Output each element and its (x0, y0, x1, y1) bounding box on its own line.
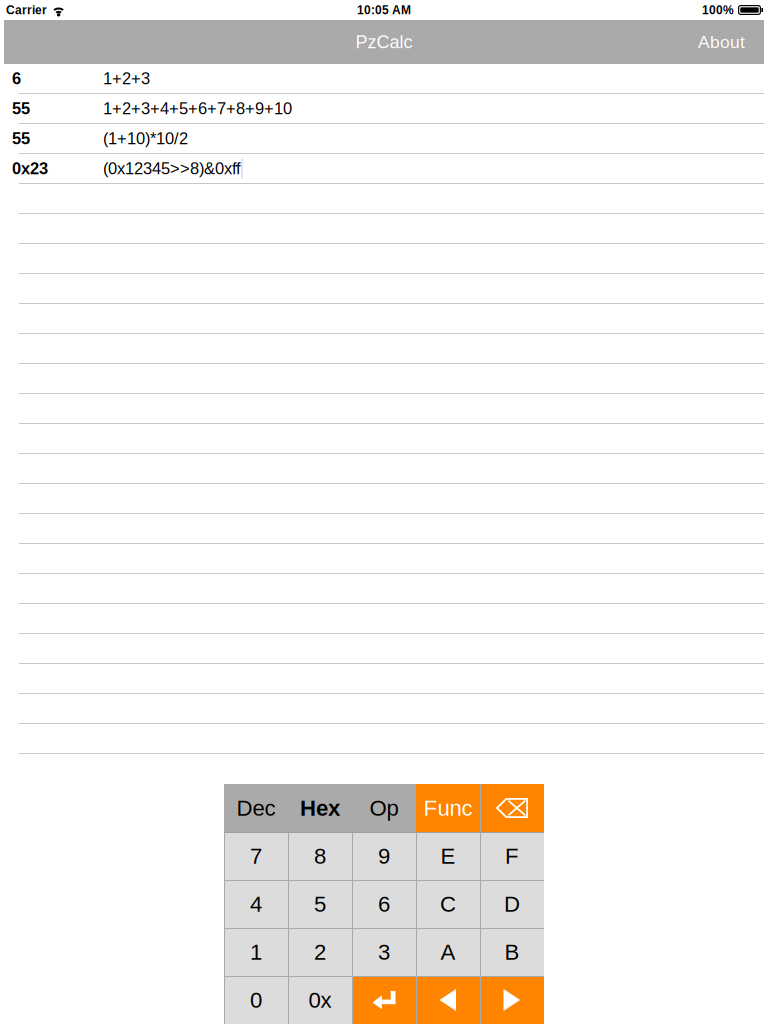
button[interactable]: 9 (352, 832, 416, 880)
staticText: 1 (250, 940, 262, 964)
staticText: 3 (378, 940, 390, 964)
button[interactable]: Hex (288, 784, 352, 832)
staticText: PzCalc (355, 32, 412, 52)
staticText: Func (423, 796, 472, 820)
staticText: 0x (308, 988, 331, 1012)
button[interactable]: About (684, 20, 764, 64)
staticText: 2 (314, 940, 326, 964)
button[interactable]: 0x (288, 976, 352, 1024)
staticText: 6 (12, 69, 21, 88)
staticText: 100% (702, 3, 734, 17)
button[interactable]: 5 (288, 880, 352, 928)
staticText: 1+2+3+4+5+6+7+8+9+10 (103, 99, 292, 118)
button[interactable]: 55 (0, 124, 768, 154)
button[interactable]: 0 (224, 976, 288, 1024)
button[interactable]: A (416, 928, 480, 976)
staticText: 7 (250, 844, 262, 868)
button[interactable]: 2 (288, 928, 352, 976)
staticText: A (440, 940, 455, 964)
staticText: Hex (300, 796, 340, 820)
button[interactable]: Dec (224, 784, 288, 832)
staticText: F (505, 844, 519, 868)
staticText: 4 (250, 892, 262, 916)
staticText: Dec (236, 796, 275, 820)
staticText: 10:05 AM (357, 3, 411, 17)
staticText: C (440, 892, 456, 916)
button[interactable]: E (416, 832, 480, 880)
staticText: 55 (12, 129, 30, 148)
button[interactable]: 6 (0, 64, 768, 94)
button[interactable]: 7 (224, 832, 288, 880)
button[interactable]: Op (352, 784, 416, 832)
button[interactable]: 55 (0, 94, 768, 124)
button[interactable]: 0x23 (0, 154, 768, 184)
staticText: 5 (314, 892, 326, 916)
button[interactable]: 4 (224, 880, 288, 928)
staticText: 1+2+3 (103, 69, 150, 88)
staticText: (0x12345>>8)&0xff (103, 159, 241, 178)
button[interactable]: Move left (416, 976, 480, 1024)
staticText: Op (369, 796, 398, 820)
button[interactable]: 6 (352, 880, 416, 928)
staticText: 0x23 (12, 159, 48, 178)
staticText: (1+10)*10/2 (103, 129, 188, 148)
button[interactable]: Func (416, 784, 480, 832)
button[interactable]: B (480, 928, 544, 976)
button[interactable]: C (416, 880, 480, 928)
button[interactable]: Enter (352, 976, 416, 1024)
button[interactable]: F (480, 832, 544, 880)
staticText: 0 (250, 988, 262, 1012)
button[interactable]: Move right (480, 976, 544, 1024)
staticText: 8 (314, 844, 326, 868)
button[interactable]: 3 (352, 928, 416, 976)
staticText: B (504, 940, 519, 964)
staticText: 9 (378, 844, 390, 868)
button[interactable]: 8 (288, 832, 352, 880)
button[interactable]: Delete (480, 784, 544, 832)
button[interactable]: 1 (224, 928, 288, 976)
button[interactable]: D (480, 880, 544, 928)
staticText: D (504, 892, 520, 916)
staticText: Carrier (6, 3, 47, 17)
staticText: About (698, 32, 745, 52)
staticText: 6 (378, 892, 390, 916)
staticText: 55 (12, 99, 30, 118)
staticText: E (440, 844, 455, 868)
